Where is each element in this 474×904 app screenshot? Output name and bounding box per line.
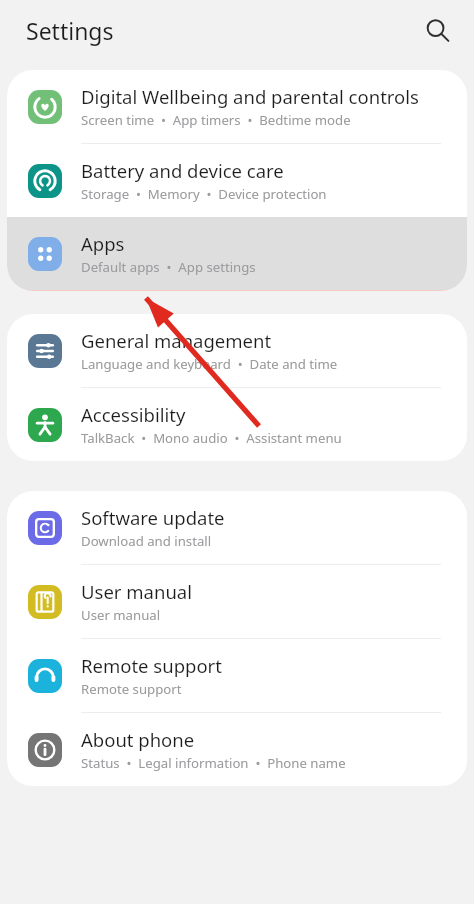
- staticText: Apps: [81, 231, 125, 256]
- button[interactable]: Software update: [7, 491, 467, 565]
- staticText: Status • Legal information • Phone name: [81, 754, 346, 772]
- button[interactable]: General management: [7, 314, 467, 388]
- button[interactable]: Digital Wellbeing and parental controls: [7, 70, 467, 144]
- staticText: Digital Wellbeing and parental controls: [81, 84, 419, 109]
- staticText: Remote support: [81, 653, 222, 678]
- staticText: Download and install: [81, 532, 212, 550]
- staticText: About phone: [81, 727, 195, 752]
- staticText: Settings: [26, 15, 114, 46]
- staticText: Remote support: [81, 680, 182, 698]
- button[interactable]: Apps: [7, 217, 467, 290]
- button[interactable]: Remote support: [7, 639, 467, 713]
- staticText: Software update: [81, 505, 225, 530]
- button[interactable]: About phone: [7, 713, 467, 786]
- staticText: User manual: [81, 606, 161, 624]
- button[interactable]: User manual: [7, 565, 467, 639]
- staticText: Storage • Memory • Device protection: [81, 185, 327, 203]
- staticText: Accessibility: [81, 402, 186, 427]
- staticText: General management: [81, 328, 272, 353]
- staticText: User manual: [81, 579, 192, 604]
- button[interactable]: Accessibility: [7, 388, 467, 461]
- staticText: TalkBack • Mono audio • Assistant menu: [81, 429, 342, 447]
- staticText: Screen time • App timers • Bedtime mode: [81, 111, 351, 129]
- button[interactable]: Search: [416, 9, 458, 51]
- staticText: Language and keyboard • Date and time: [81, 355, 338, 373]
- staticText: Battery and device care: [81, 158, 284, 183]
- staticText: Default apps • App settings: [81, 258, 256, 276]
- button[interactable]: Battery and device care: [7, 144, 467, 217]
